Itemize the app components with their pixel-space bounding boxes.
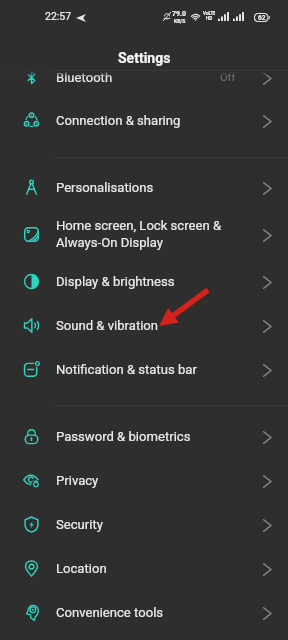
staticText: Connection & sharing — [56, 113, 181, 128]
staticText: Notification & status bar — [56, 362, 197, 377]
staticText: Home screen, Lock screen & — [56, 218, 222, 233]
staticText: Settings — [118, 50, 171, 66]
staticText: Location — [56, 561, 107, 576]
button[interactable]: Privacy — [0, 458, 288, 502]
button[interactable]: Home screen, Lock screen & — [0, 212, 288, 256]
button[interactable]: Convenience tools — [0, 590, 288, 634]
staticText: Security — [56, 517, 103, 532]
staticText: Personalisations — [56, 180, 154, 195]
staticText: 79.0 — [172, 10, 187, 18]
button[interactable]: Sound & vibration — [0, 303, 288, 347]
staticText: KB/S — [174, 18, 186, 24]
button[interactable]: Display & brightness — [0, 259, 288, 303]
staticText: Off — [220, 71, 236, 84]
button[interactable]: Bluetooth — [0, 68, 288, 99]
staticText: VoLTE — [203, 11, 215, 16]
button[interactable]: Security — [0, 502, 288, 546]
staticText: Bluetooth — [56, 70, 113, 85]
button[interactable]: Password & biometrics — [0, 414, 288, 458]
staticText: Password & biometrics — [56, 429, 191, 444]
button[interactable]: Personalisations — [0, 165, 288, 209]
button[interactable]: Connection & sharing — [0, 98, 288, 142]
staticText: Display & brightness — [56, 274, 175, 289]
staticText: 22:57 — [45, 10, 72, 22]
staticText: Sound & vibration — [56, 318, 159, 333]
button[interactable]: Notification & status bar — [0, 347, 288, 391]
staticText: Privacy — [56, 473, 99, 488]
staticText: 62 — [258, 14, 266, 22]
staticText: Convenience tools — [56, 605, 164, 620]
button[interactable]: Location — [0, 546, 288, 590]
staticText: HD — [206, 16, 213, 21]
staticText: Always-On Display — [56, 235, 163, 250]
